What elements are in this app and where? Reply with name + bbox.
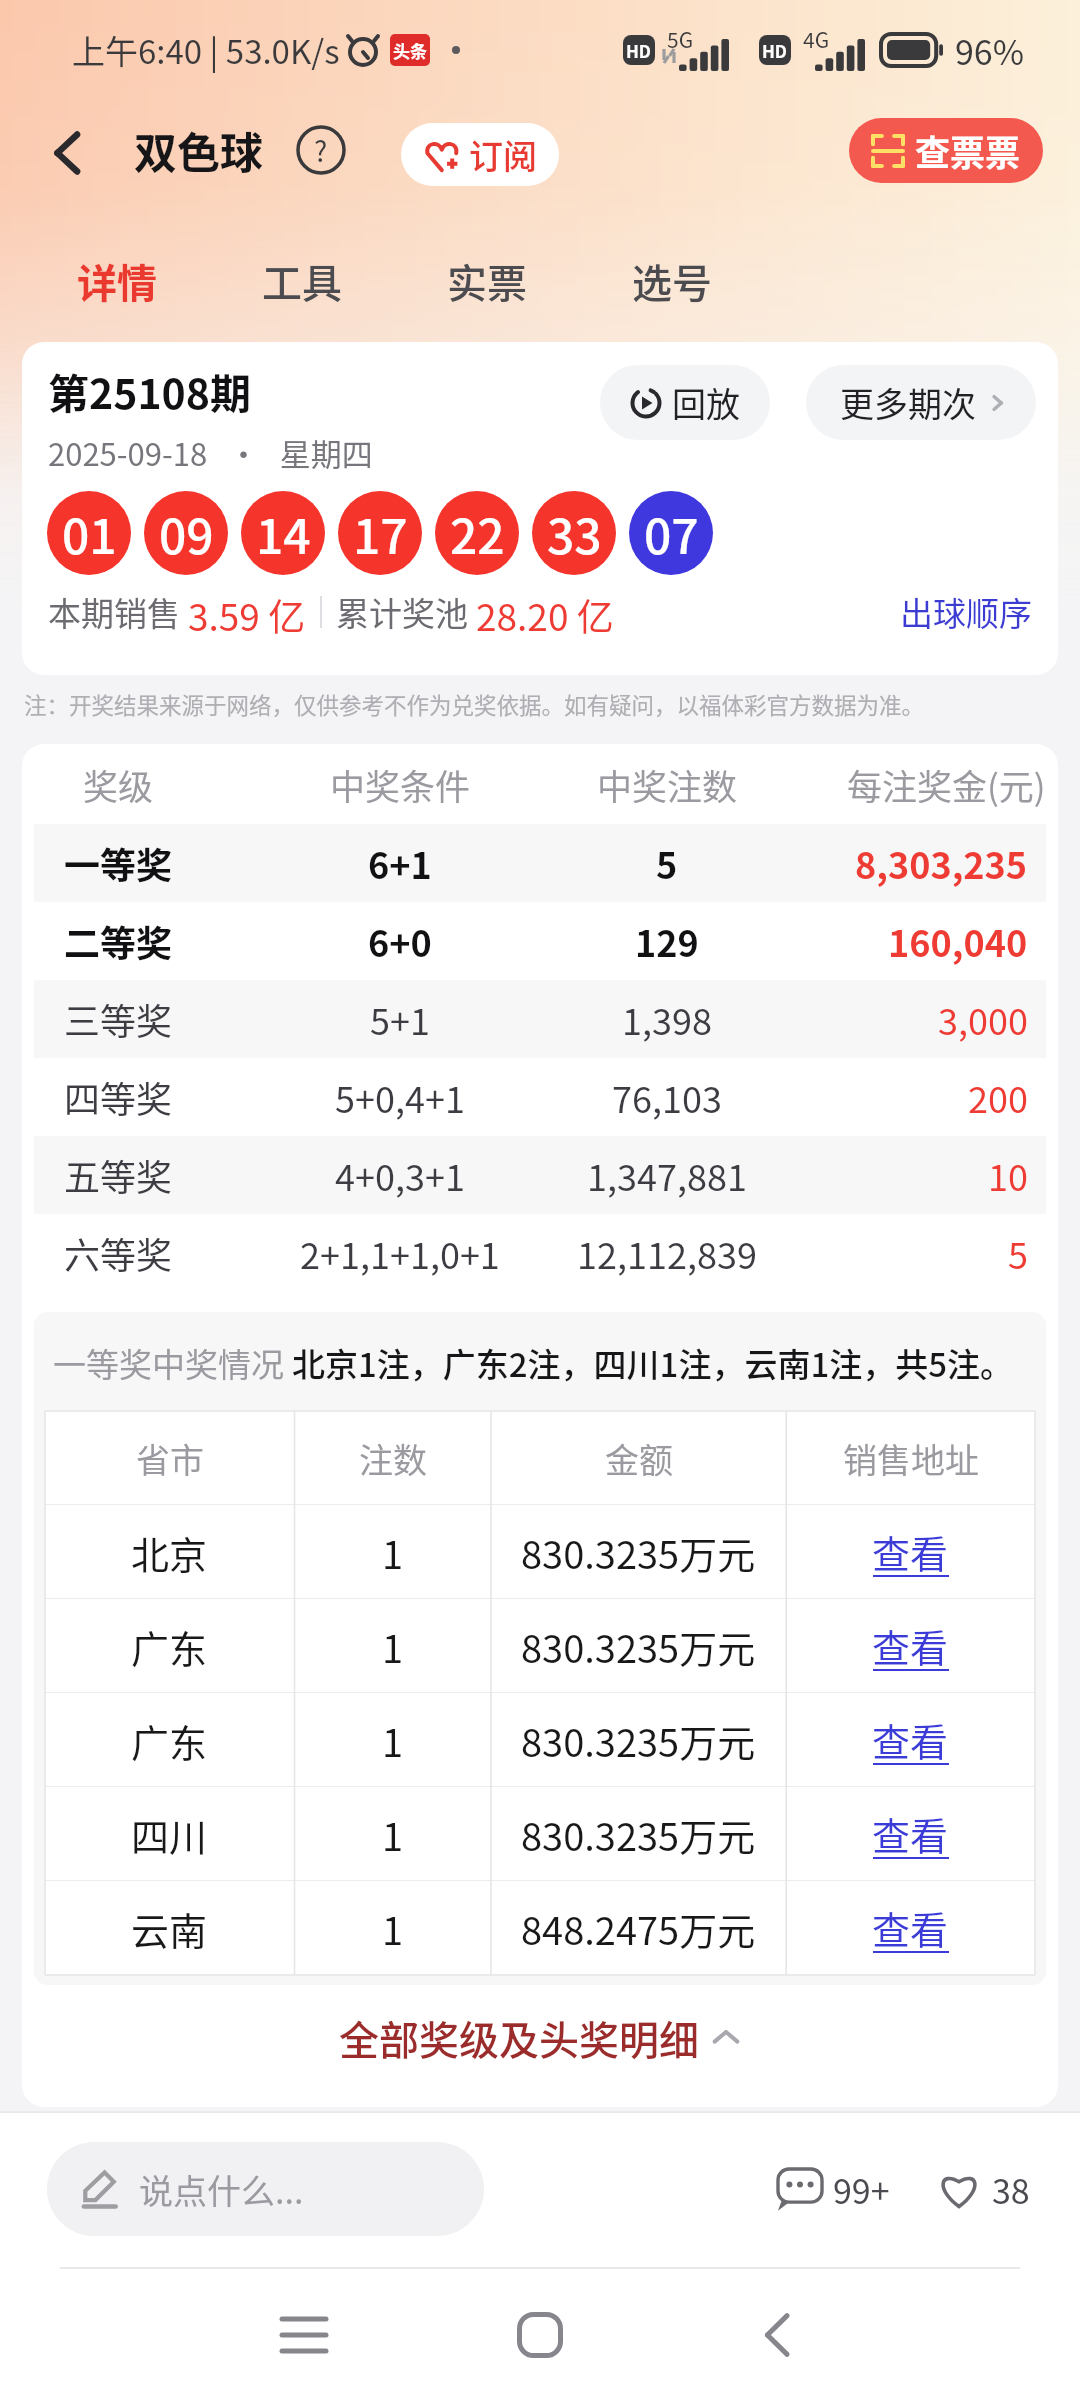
staticText: 8,303,235 xyxy=(855,837,1028,889)
staticText: 830.3235万元 xyxy=(521,1807,756,1862)
button[interactable]: 查看 xyxy=(786,1693,1035,1787)
staticText: 1 xyxy=(382,1807,404,1862)
staticText: 三等奖 xyxy=(64,993,173,1045)
staticText: 1,398 xyxy=(622,993,712,1045)
staticText: 四等奖 xyxy=(64,1071,173,1123)
staticText: 累计奖池 xyxy=(336,588,476,636)
staticText: 全部奖级及头奖明细 xyxy=(339,2009,699,2067)
staticText: 工具 xyxy=(262,252,342,310)
button[interactable]: 查看 xyxy=(786,1787,1035,1881)
staticText: 省市 xyxy=(136,1434,204,1483)
staticText: 3.59 亿 xyxy=(188,588,306,636)
button[interactable]: 说点什么... xyxy=(47,2142,484,2236)
staticText: 3,000 xyxy=(938,993,1028,1045)
staticText: 160,040 xyxy=(888,915,1028,967)
staticText: 选号 xyxy=(632,252,712,310)
staticText: 上午6:40 | 53.0K/s xyxy=(72,26,340,74)
staticText: 订阅 xyxy=(469,130,537,179)
staticText: 金额 xyxy=(605,1434,673,1483)
staticText: 5 xyxy=(1008,1227,1028,1279)
button[interactable]: 查票票 xyxy=(849,118,1043,183)
staticText: 10 xyxy=(988,1149,1028,1201)
staticText: 第25108期 xyxy=(48,361,251,420)
staticText: 99+ xyxy=(833,2165,890,2214)
staticText: 830.3235万元 xyxy=(521,1619,756,1674)
staticText: 更多期次 xyxy=(840,378,976,427)
staticText: 38 xyxy=(992,2165,1030,2214)
staticText: 76,103 xyxy=(612,1071,722,1123)
staticText: 本期销售 xyxy=(48,588,188,636)
staticText: 二等奖 xyxy=(64,915,173,967)
staticText: 830.3235万元 xyxy=(521,1713,756,1768)
staticText: 中奖条件 xyxy=(330,759,471,810)
staticText: 14 xyxy=(256,498,311,568)
staticText: 注数 xyxy=(359,1434,427,1483)
staticText: 北京 xyxy=(131,1525,208,1580)
button[interactable]: 订阅 xyxy=(401,123,559,186)
staticText: 28.20 亿 xyxy=(476,588,614,636)
button[interactable]: 全部奖级及头奖明细 xyxy=(22,2009,1058,2067)
staticText: 查看 xyxy=(872,1900,949,1955)
button[interactable]: Help xyxy=(293,122,349,178)
staticText: 五等奖 xyxy=(64,1149,173,1201)
staticText: 查看 xyxy=(872,1524,949,1579)
staticText: 头条 xyxy=(393,38,427,63)
button[interactable]: 选号 xyxy=(579,200,764,342)
staticText: 1 xyxy=(382,1619,404,1674)
staticText: 北京1注，广东2注，四川1注，云南1注，共5注。 xyxy=(292,1339,1014,1387)
staticText: 六等奖 xyxy=(64,1227,173,1279)
staticText: 中奖注数 xyxy=(597,759,738,810)
staticText: 830.3235万元 xyxy=(521,1525,756,1580)
staticText: 4G xyxy=(803,24,830,54)
staticText: 广东 xyxy=(131,1713,208,1768)
staticText: 每注奖金(元) xyxy=(847,759,1046,810)
staticText: 848.2475万元 xyxy=(521,1901,756,1956)
staticText: 07 xyxy=(644,498,699,568)
staticText: 5G xyxy=(667,24,694,54)
staticText: 09 xyxy=(159,498,214,568)
staticText: 1,347,881 xyxy=(587,1149,747,1201)
staticText: 6+0 xyxy=(368,915,432,967)
staticText: 200 xyxy=(968,1071,1028,1123)
button[interactable]: 99+ xyxy=(777,2165,890,2214)
button[interactable]: 查看 xyxy=(786,1505,1035,1599)
staticText: 12,112,839 xyxy=(577,1227,757,1279)
staticText: 17 xyxy=(353,498,408,568)
staticText: 销售地址 xyxy=(843,1434,979,1483)
staticText: 查看 xyxy=(872,1618,949,1673)
staticText: 查看 xyxy=(872,1712,949,1767)
button[interactable]: 销售地址 xyxy=(786,1411,1035,1505)
button[interactable]: 详情 xyxy=(24,200,209,342)
staticText: 1 xyxy=(382,1901,404,1956)
button[interactable]: 回放 xyxy=(600,365,770,440)
staticText: 云南 xyxy=(131,1901,208,1956)
button[interactable]: 出球顺序 xyxy=(900,588,1032,636)
button[interactable]: Recent apps xyxy=(224,2280,384,2390)
staticText: 22 xyxy=(450,498,505,568)
staticText: HD xyxy=(626,38,652,63)
staticText: 一等奖中奖情况 xyxy=(53,1339,292,1387)
staticText: 查票票 xyxy=(915,125,1021,176)
staticText: 5 xyxy=(656,837,678,889)
staticText: 注：开奖结果来源于网络，仅供参考不作为兑奖依据。如有疑问，以福体彩官方数据为准。 xyxy=(24,688,925,721)
button[interactable]: 更多期次 xyxy=(806,365,1036,440)
staticText: 129 xyxy=(635,915,699,967)
staticText: 详情 xyxy=(77,252,157,310)
staticText: 2+1,1+1,0+1 xyxy=(300,1227,500,1279)
staticText: 说点什么... xyxy=(139,2165,304,2214)
staticText: 5+0,4+1 xyxy=(335,1071,465,1123)
staticText: 2025-09-18 · 星期四 xyxy=(48,430,373,475)
button[interactable]: Home xyxy=(460,2280,620,2390)
button[interactable]: 38 xyxy=(936,2165,1030,2214)
button[interactable]: 实票 xyxy=(394,200,579,342)
staticText: 四川 xyxy=(131,1807,208,1862)
button[interactable]: 查看 xyxy=(786,1881,1035,1975)
button[interactable]: Back xyxy=(0,100,134,200)
button[interactable]: Back xyxy=(697,2280,857,2390)
staticText: 查看 xyxy=(872,1806,949,1861)
staticText: 6+1 xyxy=(368,837,432,889)
staticText: 4+0,3+1 xyxy=(335,1149,465,1201)
staticText: 5+1 xyxy=(370,993,430,1045)
button[interactable]: 查看 xyxy=(786,1599,1035,1693)
button[interactable]: 工具 xyxy=(209,200,394,342)
